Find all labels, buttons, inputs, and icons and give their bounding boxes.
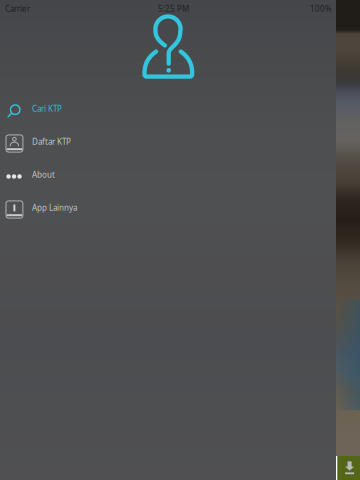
staticText: 100% (310, 3, 332, 14)
button[interactable]: Cari KTP (0, 0, 300, 480)
button[interactable]: About (0, 0, 300, 480)
button[interactable]: Download (337, 456, 360, 480)
staticText: Cari KTP (32, 103, 62, 114)
staticText: Carrier (5, 3, 30, 14)
staticText: App Lainnya (32, 202, 77, 213)
button[interactable]: App Lainnya (0, 0, 300, 480)
staticText: About (32, 169, 55, 180)
button[interactable]: Daftar KTP (0, 0, 300, 480)
staticText: Daftar KTP (32, 136, 71, 147)
staticText: 5:25 PM (158, 3, 189, 14)
